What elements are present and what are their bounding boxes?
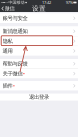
staticText: 账号与安全 [3,15,28,22]
staticText: 17:42 [42,0,51,5]
button[interactable]: 账号与安全 [0,13,78,23]
button[interactable]: 隐私 [0,36,78,46]
staticText: 帮助与反馈 [3,60,28,67]
button[interactable]: 帮助与反馈 [0,59,78,68]
button[interactable]: 退出登录 [0,93,78,100]
staticText: 97% [66,0,73,5]
staticText: 中国移动 [8,0,24,5]
staticText: 新消息通知 [3,28,28,35]
staticText: 微信 [4,5,14,12]
button[interactable]: 返回 微信 [0,5,16,12]
button[interactable]: 新消息通知 [0,26,78,36]
staticText: 设置 [32,4,46,13]
staticText: 隐私 [3,38,13,44]
staticText: 关于微信 [3,70,23,77]
staticText: 插件 [3,82,13,89]
staticText: 通用 [3,48,13,54]
button[interactable]: 关于微信 [0,69,78,78]
button[interactable]: 插件 [0,81,78,90]
button[interactable]: 通用 [0,46,78,56]
staticText: 退出登录 [29,94,49,100]
